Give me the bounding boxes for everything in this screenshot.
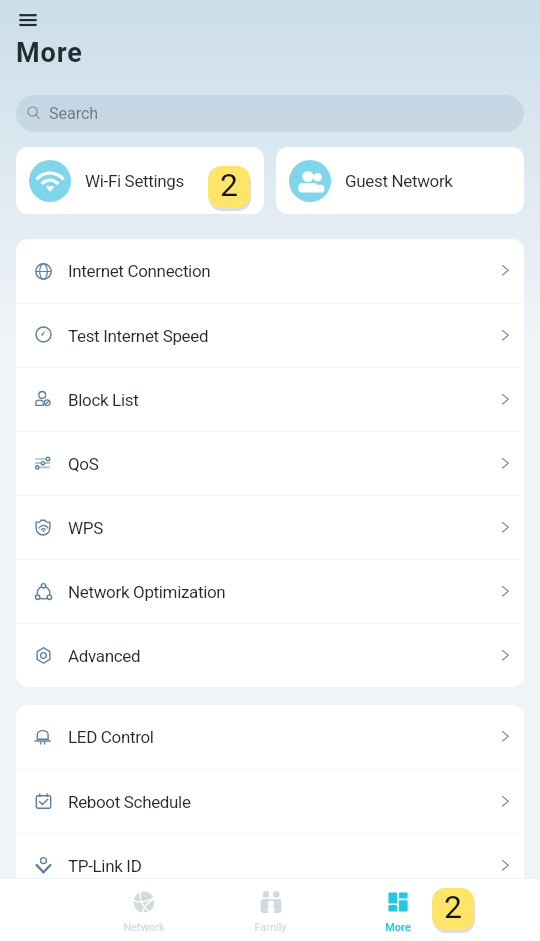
button[interactable]: 2 notifications — [208, 166, 250, 208]
staticText: QoS — [68, 454, 501, 474]
staticText: Search — [49, 104, 99, 123]
button[interactable]: Menu — [2, 0, 38, 37]
staticText: Block List — [68, 390, 501, 410]
button[interactable]: More — [334, 886, 461, 934]
staticText: LED Control — [68, 727, 501, 747]
button[interactable]: TP-Link ID — [16, 834, 524, 897]
other: More — [387, 891, 409, 913]
staticText: More — [385, 921, 411, 934]
button[interactable]: Reboot Schedule — [16, 770, 524, 833]
button[interactable]: Manage Router — [16, 898, 524, 941]
button[interactable]: QoS — [16, 432, 524, 495]
button[interactable]: Internet Connection — [16, 239, 524, 303]
button[interactable]: Network Optimization — [16, 560, 524, 623]
button[interactable]: Guest Network — [276, 147, 524, 214]
staticText: 2 — [220, 166, 238, 204]
staticText: WPS — [68, 518, 501, 538]
button[interactable]: Network — [81, 886, 207, 934]
staticText: Wi-Fi Settings — [85, 171, 184, 191]
button[interactable]: Family — [207, 886, 334, 934]
button[interactable]: Wi-Fi Settings — [16, 147, 264, 214]
staticText: Family — [254, 921, 287, 934]
staticText: TP-Link ID — [68, 856, 501, 876]
staticText: Reboot Schedule — [68, 792, 501, 812]
staticText: Network Optimization — [68, 582, 501, 602]
button[interactable]: WPS — [16, 496, 524, 559]
staticText: Internet Connection — [68, 261, 501, 281]
button[interactable]: Advanced — [16, 624, 524, 687]
staticText: Manage Router — [68, 910, 501, 930]
staticText: Guest Network — [345, 171, 453, 191]
other: Family — [260, 891, 282, 913]
staticText: Network — [123, 921, 165, 934]
staticText: Advanced — [68, 646, 501, 666]
button[interactable]: 2 notifications — [432, 888, 474, 930]
staticText: Test Internet Speed — [68, 326, 501, 346]
staticText: More — [16, 37, 83, 69]
button[interactable]: LED Control — [16, 705, 524, 769]
button[interactable]: Block List — [16, 368, 524, 431]
button[interactable]: Search — [16, 95, 524, 132]
button[interactable]: Test Internet Speed — [16, 304, 524, 367]
other: Network — [133, 891, 155, 913]
staticText: 2 — [444, 888, 462, 926]
